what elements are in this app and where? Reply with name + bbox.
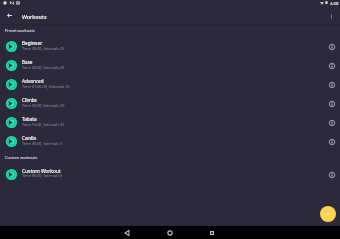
button[interactable]: Advanced bbox=[0, 75, 340, 94]
staticText: Beginner bbox=[22, 40, 43, 46]
staticText: Custom workouts bbox=[5, 155, 38, 160]
button[interactable]: Add workout bbox=[320, 206, 336, 222]
staticText: Time 15:00, Intervals 35 bbox=[22, 122, 65, 127]
staticText: Climbs bbox=[22, 97, 37, 103]
staticText: Preset workouts bbox=[5, 28, 35, 33]
button[interactable]: Climbs bbox=[0, 94, 340, 113]
button[interactable]: Base bbox=[0, 56, 340, 75]
button[interactable]: Workout info bbox=[325, 116, 339, 130]
staticText: Base bbox=[22, 59, 33, 65]
staticText: Time 01:00:00, Intervals 25 bbox=[22, 84, 70, 89]
button[interactable]: Back bbox=[120, 226, 133, 239]
staticText: Time 06:00, Intervals 6 bbox=[22, 173, 63, 178]
staticText: Time 40:00, Intervals 3 bbox=[22, 141, 63, 146]
button[interactable]: Back bbox=[2, 8, 17, 23]
staticText: Tabata bbox=[22, 116, 37, 122]
button[interactable]: Workout info bbox=[325, 40, 339, 54]
staticText: Time 45:00, Intervals 25 bbox=[22, 65, 65, 70]
button[interactable]: Home bbox=[163, 226, 176, 239]
button[interactable]: Workout info bbox=[325, 168, 339, 182]
button[interactable]: Workout info bbox=[325, 135, 339, 149]
button[interactable]: Beginner bbox=[0, 37, 340, 56]
button[interactable]: Recents bbox=[205, 226, 218, 239]
staticText: Advanced bbox=[22, 78, 44, 84]
staticText: Time 35:00, Intervals 20 bbox=[22, 103, 65, 108]
staticText: Cardio bbox=[22, 135, 37, 141]
staticText: Workouts bbox=[22, 13, 47, 20]
button[interactable]: Custom Workout bbox=[0, 165, 340, 184]
staticText: 4:38 bbox=[330, 0, 339, 6]
button[interactable]: Cardio bbox=[0, 132, 340, 151]
button[interactable]: More options bbox=[324, 9, 339, 24]
staticText: Time 30:00, Intervals 25 bbox=[22, 46, 65, 51]
button[interactable]: Workout info bbox=[325, 78, 339, 92]
button[interactable]: Tabata bbox=[0, 113, 340, 132]
button[interactable]: Workout info bbox=[325, 59, 339, 73]
staticText: Custom Workout bbox=[22, 168, 61, 175]
button[interactable]: Workout info bbox=[325, 97, 339, 111]
